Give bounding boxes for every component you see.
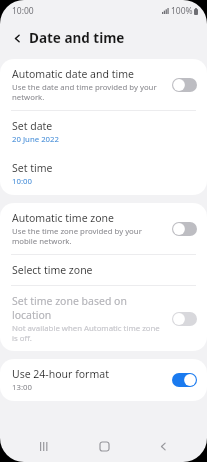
button[interactable]: Off xyxy=(172,222,197,236)
button[interactable]: Back xyxy=(147,430,179,462)
staticText: 13:00 xyxy=(12,382,32,393)
staticText: Select time zone xyxy=(12,263,93,277)
staticText: Use the date and time provided by your n… xyxy=(12,82,166,102)
staticText: Set time zone based on location xyxy=(12,294,166,322)
staticText: Automatic date and time xyxy=(12,67,134,81)
button[interactable]: Off xyxy=(172,78,197,92)
staticText: Use 24-hour format xyxy=(12,367,109,381)
button[interactable]: Use 24-hour format xyxy=(0,359,207,401)
button[interactable]: Set time zone based on location xyxy=(0,286,207,351)
button[interactable]: Home xyxy=(88,430,120,462)
button[interactable]: Automatic time zone xyxy=(0,203,207,254)
button[interactable]: Automatic date and time xyxy=(0,59,207,110)
button[interactable]: Set date xyxy=(0,111,207,153)
button[interactable]: Select time zone xyxy=(0,255,207,285)
staticText: 10:00 xyxy=(12,5,34,17)
staticText: Use the time zone provided by your mobil… xyxy=(12,226,166,246)
staticText: Automatic time zone xyxy=(12,211,114,225)
button[interactable]: Off xyxy=(172,312,197,326)
staticText: Not available when Automatic time zone i… xyxy=(12,323,166,343)
staticText: Set time xyxy=(12,161,53,175)
staticText: 20 June 2022 xyxy=(12,134,59,145)
staticText: 10:00 xyxy=(12,176,32,187)
button[interactable]: Set time xyxy=(0,153,207,195)
button[interactable]: On xyxy=(172,373,197,387)
staticText: Set date xyxy=(12,119,53,133)
button[interactable]: Navigate up xyxy=(7,28,27,48)
staticText: Date and time xyxy=(29,29,125,47)
staticText: 100% xyxy=(171,5,193,17)
button[interactable]: Recent apps xyxy=(28,430,60,462)
